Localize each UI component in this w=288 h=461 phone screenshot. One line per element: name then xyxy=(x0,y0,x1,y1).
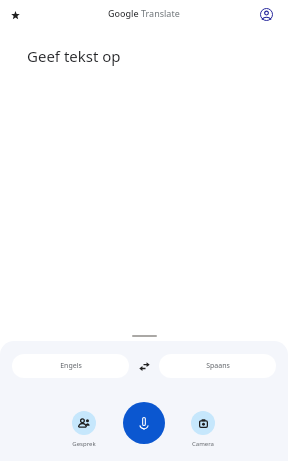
staticText: Gesprek xyxy=(72,440,96,448)
staticText: Engels xyxy=(60,361,82,371)
staticText: Spaans xyxy=(206,361,230,371)
button[interactable]: Geef tekst op xyxy=(0,28,288,285)
button[interactable]: Spaans xyxy=(159,354,276,378)
button[interactable]: Saved xyxy=(4,4,27,27)
button[interactable]: Camera xyxy=(181,402,225,448)
staticText: Google xyxy=(108,7,139,19)
button[interactable]: Gesprek xyxy=(62,402,106,448)
button[interactable]: Speak xyxy=(123,402,165,444)
staticText: Geef tekst op xyxy=(27,46,121,66)
button[interactable]: Swap languages xyxy=(129,354,159,378)
staticText: Camera xyxy=(192,440,214,448)
staticText: Translate xyxy=(141,7,180,19)
button[interactable]: Account xyxy=(255,3,278,26)
button[interactable]: Engels xyxy=(12,354,129,378)
